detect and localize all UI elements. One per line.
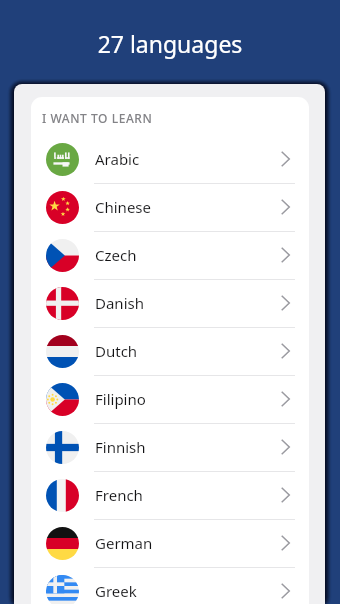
staticText: Danish: [95, 293, 144, 313]
button[interactable]: Arabic: [31, 135, 309, 183]
button[interactable]: German: [31, 519, 309, 567]
staticText: Arabic: [95, 149, 140, 169]
staticText: Finnish: [95, 437, 146, 457]
button[interactable]: Chinese: [31, 183, 309, 231]
button[interactable]: Danish: [31, 279, 309, 327]
button[interactable]: Czech: [31, 231, 309, 279]
button[interactable]: Finnish: [31, 423, 309, 471]
staticText: French: [95, 485, 143, 505]
staticText: I WANT TO LEARN: [42, 110, 153, 126]
button[interactable]: French: [31, 471, 309, 519]
staticText: Greek: [95, 581, 137, 601]
button[interactable]: Dutch: [31, 327, 309, 375]
button[interactable]: Greek: [31, 567, 309, 604]
staticText: Filipino: [95, 389, 146, 409]
button[interactable]: Filipino: [31, 375, 309, 423]
staticText: Dutch: [95, 341, 138, 361]
staticText: 27 languages: [0, 28, 340, 59]
staticText: German: [95, 533, 153, 553]
staticText: Czech: [95, 245, 137, 265]
staticText: Chinese: [95, 197, 151, 217]
